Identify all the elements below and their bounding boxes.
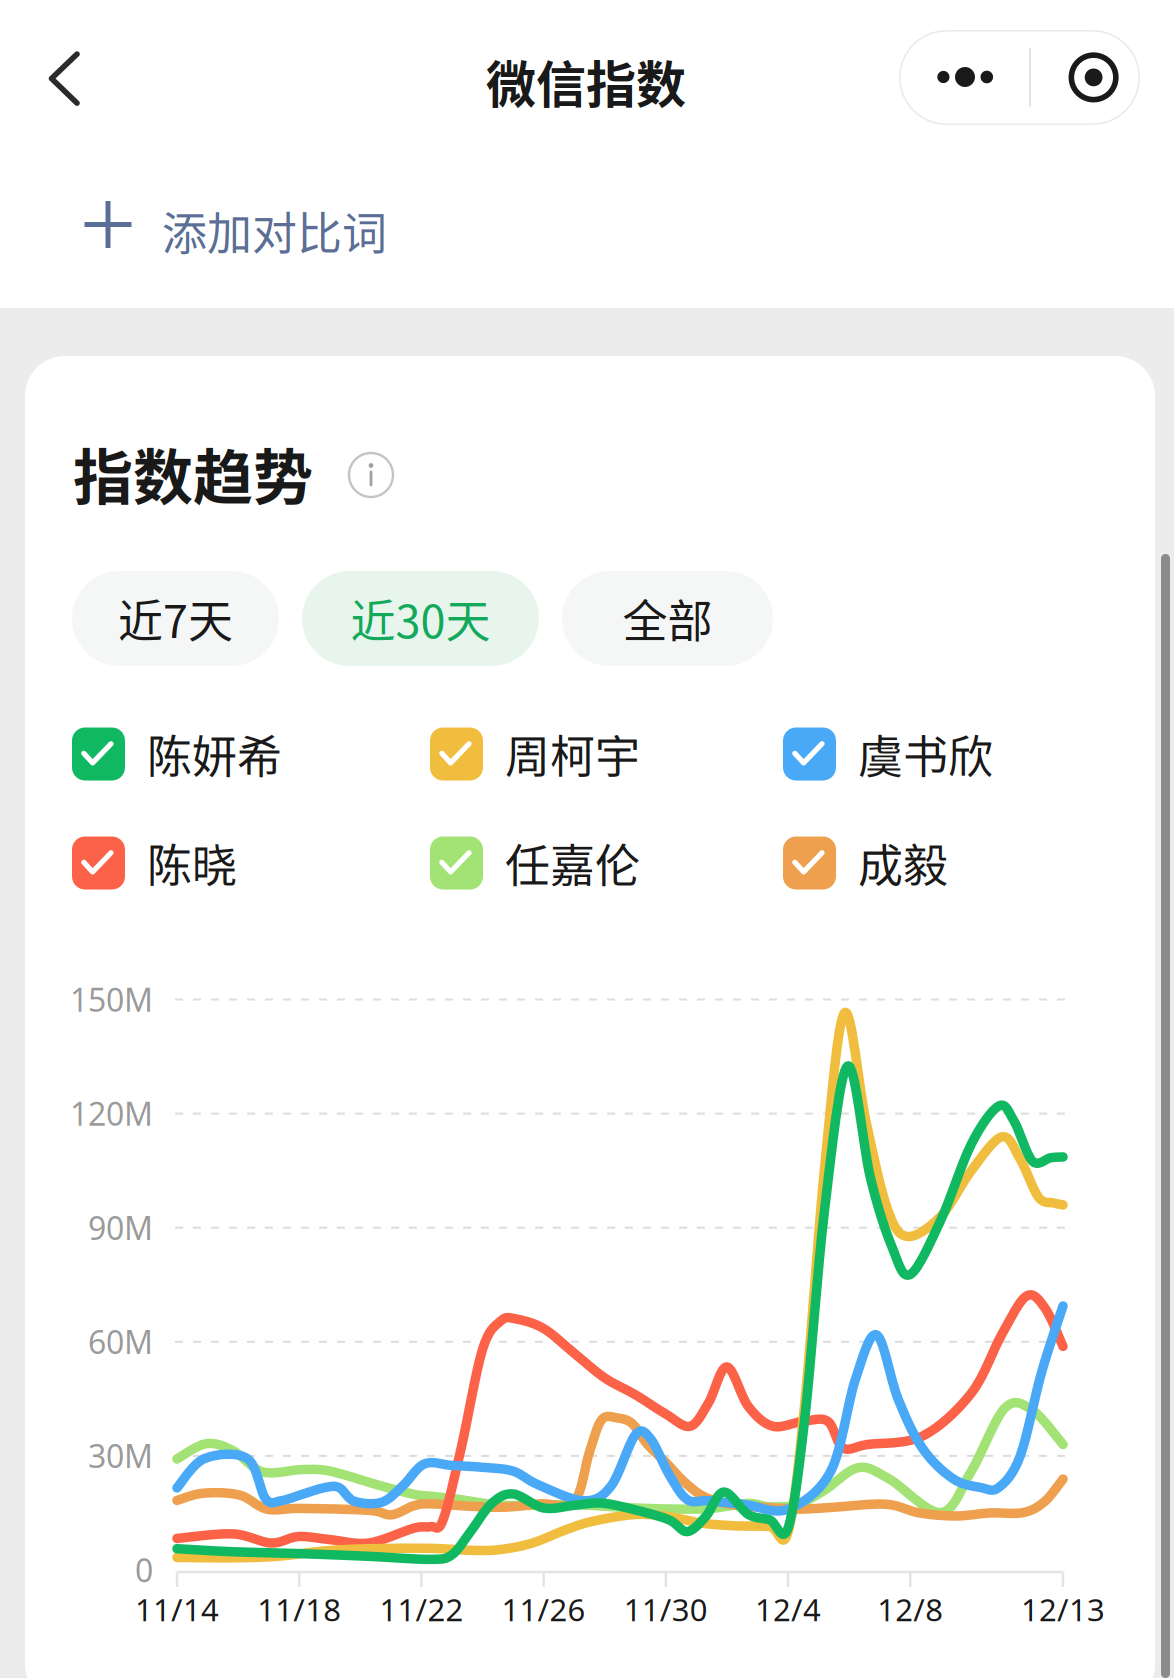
staticText: 周柯宇: [505, 721, 640, 787]
staticText: 11/18: [257, 1588, 341, 1630]
staticText: 微信指数: [486, 45, 686, 117]
staticText: 陈妍希: [147, 721, 282, 787]
button[interactable]: 陈妍希: [72, 724, 430, 784]
staticText: 12/13: [1021, 1588, 1105, 1630]
staticText: 11/22: [379, 1588, 463, 1630]
staticText: 90M: [88, 1206, 153, 1249]
staticText: 120M: [70, 1092, 153, 1135]
staticText: 虞书欣: [858, 721, 993, 787]
staticText: 近7天: [118, 586, 233, 651]
button[interactable]: 近7天: [72, 571, 279, 666]
button[interactable]: About index trend: [348, 452, 394, 498]
button[interactable]: 任嘉伦: [430, 833, 783, 893]
button[interactable]: More options: [899, 30, 1140, 125]
button[interactable]: 周柯宇: [430, 724, 783, 784]
button[interactable]: 添加对比词: [84, 177, 424, 273]
staticText: 12/4: [755, 1588, 821, 1630]
staticText: 添加对比词: [162, 198, 387, 263]
staticText: 150M: [70, 977, 153, 1021]
staticText: 11/30: [624, 1588, 708, 1630]
staticText: 12/8: [877, 1588, 943, 1630]
staticText: 陈晓: [147, 830, 237, 896]
staticText: 指数趋势: [73, 430, 313, 517]
staticText: 60M: [88, 1320, 153, 1363]
staticText: 成毅: [858, 830, 948, 896]
staticText: 0: [135, 1548, 153, 1592]
button[interactable]: 陈晓: [72, 833, 430, 893]
staticText: 任嘉伦: [505, 830, 640, 896]
staticText: 11/14: [135, 1588, 219, 1630]
button[interactable]: 虞书欣: [783, 724, 1083, 784]
button[interactable]: 全部: [562, 571, 773, 666]
staticText: 11/26: [502, 1588, 586, 1630]
staticText: 全部: [622, 586, 712, 651]
staticText: 近30天: [350, 586, 490, 651]
button[interactable]: Back: [38, 31, 134, 127]
button[interactable]: 近30天: [302, 571, 539, 666]
staticText: 30M: [88, 1434, 153, 1477]
button[interactable]: 成毅: [783, 833, 1083, 893]
